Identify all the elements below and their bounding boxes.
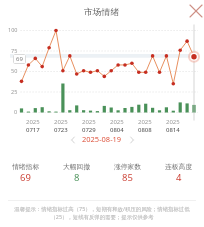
staticText: 2025 — [166, 118, 180, 126]
staticText: 2025 — [82, 118, 96, 126]
staticText: 大幅回撤 — [63, 162, 91, 171]
staticText: 25 — [11, 88, 18, 95]
staticText: 0717 — [26, 126, 40, 134]
staticText: 4 — [176, 171, 182, 184]
button[interactable]: 连板高度 — [153, 162, 204, 184]
staticText: 0729 — [82, 126, 96, 134]
button[interactable]: Close — [186, 1, 204, 20]
staticText: 0804 — [110, 126, 124, 134]
button[interactable]: Previous day — [66, 133, 79, 146]
staticText: 情绪指标 — [12, 162, 40, 171]
staticText: 50 — [11, 67, 18, 74]
button[interactable]: 涨停家数 — [102, 162, 153, 184]
staticText: 涨停家数 — [114, 162, 142, 171]
staticText: 69 — [20, 171, 31, 184]
button[interactable]: 大幅回撤 — [51, 162, 102, 184]
staticText: 100 — [8, 26, 18, 33]
staticText: 连板高度 — [165, 162, 193, 171]
staticText: 85 — [122, 171, 133, 184]
button[interactable]: Next day — [125, 133, 138, 146]
staticText: 2025 — [26, 118, 40, 126]
staticText: 市场情绪 — [84, 7, 120, 18]
staticText: 8 — [74, 171, 80, 184]
staticText: 2025 — [54, 118, 68, 126]
button[interactable]: 情绪指标 — [0, 162, 51, 184]
staticText: 0723 — [54, 126, 68, 134]
staticText: 2025 — [138, 118, 152, 126]
staticText: 0 — [14, 108, 18, 115]
staticText: 75 — [11, 47, 18, 54]
staticText: 0808 — [138, 126, 152, 134]
button[interactable]: 2025-08-19 — [82, 134, 122, 144]
staticText: 2025 — [110, 118, 124, 126]
staticText: 69 — [16, 55, 23, 63]
staticText: 0814 — [166, 126, 180, 134]
staticText: 温馨提示：情绪指标过高（75），短期有释放/积压的风险；情绪指标过低（25），短… — [7, 205, 197, 220]
